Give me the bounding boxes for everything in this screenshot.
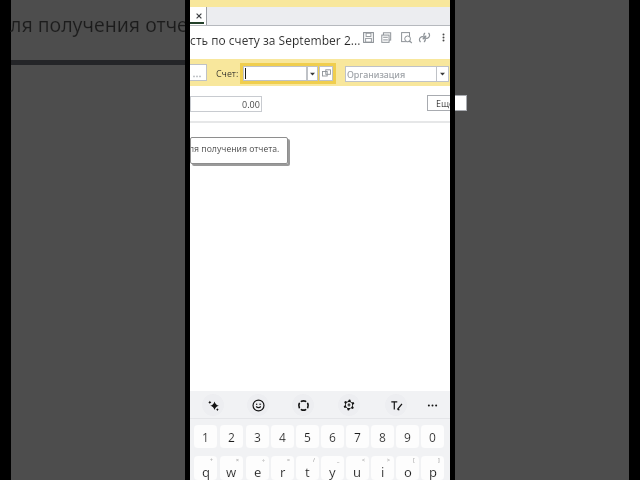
staticText: /	[313, 457, 315, 464]
button[interactable]: More	[421, 394, 443, 416]
staticText: >	[387, 457, 390, 464]
button[interactable]: Settings	[338, 394, 360, 416]
button[interactable]: AI assist	[202, 394, 224, 416]
staticText: 2	[228, 429, 235, 445]
staticText: Счет:	[216, 67, 239, 79]
staticText: ля получения отчета.	[189, 143, 280, 155]
button[interactable]: Save	[357, 26, 379, 48]
button[interactable]: <	[346, 456, 369, 480]
staticText: r	[280, 463, 286, 480]
button[interactable]: ]	[421, 456, 444, 480]
staticText: ]	[438, 457, 440, 464]
staticText: i	[381, 463, 385, 480]
staticText: 6	[329, 429, 336, 445]
staticText: q	[202, 463, 210, 480]
staticText: y	[329, 463, 336, 480]
button[interactable]: 3	[246, 425, 269, 448]
staticText: 1	[202, 429, 209, 445]
button[interactable]: Link	[413, 26, 435, 48]
staticText: [	[413, 457, 415, 464]
button[interactable]: Dropdown	[307, 66, 318, 81]
staticText: 0.00	[242, 98, 260, 110]
staticText: Организация	[347, 68, 436, 80]
button[interactable]: [	[396, 456, 419, 480]
button[interactable]: /	[296, 456, 319, 480]
staticText: =	[287, 457, 290, 464]
button[interactable]: Организация	[345, 66, 449, 82]
button[interactable]: >	[371, 456, 394, 480]
button[interactable]: Close tab	[190, 7, 206, 26]
staticText: 7	[354, 429, 361, 445]
staticText: ×	[236, 457, 239, 464]
staticText: 9	[404, 429, 411, 445]
button[interactable]: Emoji	[247, 394, 269, 416]
button[interactable]: 9	[396, 425, 419, 448]
button[interactable]: Print	[375, 26, 397, 48]
staticText: 5	[304, 429, 311, 445]
button[interactable]: 0.00	[190, 96, 262, 112]
staticText: 8	[379, 429, 386, 445]
button[interactable]: 1	[194, 425, 217, 448]
button[interactable]: ÷	[246, 456, 269, 480]
staticText: w	[226, 463, 237, 480]
button[interactable]: More options	[432, 26, 454, 48]
staticText: 3	[254, 429, 261, 445]
staticText: ÷	[262, 457, 265, 464]
button[interactable]: _	[321, 456, 344, 480]
staticText: сть по счету за September 2...	[190, 32, 361, 48]
button[interactable]: Еще	[427, 95, 467, 111]
button[interactable]: 5	[296, 425, 319, 448]
staticText: e	[254, 463, 262, 480]
button[interactable]: 7	[346, 425, 369, 448]
staticText: _	[337, 457, 340, 464]
staticText: 4	[279, 429, 286, 445]
button[interactable]: Find in report	[395, 26, 417, 48]
button[interactable]: Text editing	[385, 394, 407, 416]
button[interactable]: ля получения отчета.	[190, 137, 288, 164]
staticText: o	[404, 463, 412, 480]
staticText: +	[210, 457, 213, 464]
staticText: u	[353, 463, 362, 480]
staticText: Еще	[436, 97, 455, 109]
staticText: ля получения отче	[10, 11, 188, 38]
button[interactable]: 4	[271, 425, 294, 448]
button[interactable]: 6	[321, 425, 344, 448]
button[interactable]: =	[271, 456, 294, 480]
button[interactable]: More fields	[186, 64, 207, 81]
staticText: p	[429, 463, 437, 480]
button[interactable]: ×	[220, 456, 243, 480]
staticText: 0	[429, 429, 436, 445]
button[interactable]: +	[194, 456, 217, 480]
button[interactable]	[243, 66, 307, 81]
button[interactable]: 0	[421, 425, 444, 448]
button[interactable]: 8	[371, 425, 394, 448]
button[interactable]: 2	[220, 425, 243, 448]
button[interactable]: Cursor control	[292, 394, 314, 416]
staticText: t	[305, 463, 310, 480]
button[interactable]: Select account	[319, 66, 333, 81]
staticText: <	[362, 457, 365, 464]
